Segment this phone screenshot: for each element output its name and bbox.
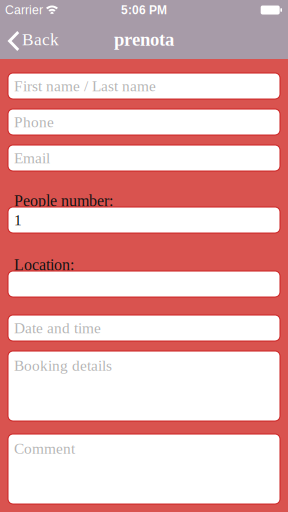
staticText: Back	[22, 30, 59, 49]
staticText: Booking details	[14, 357, 112, 374]
button[interactable]: Comment	[8, 434, 280, 504]
staticText: People number:	[14, 192, 113, 210]
staticText: Phone	[14, 113, 54, 130]
button[interactable]: Booking details	[8, 351, 280, 421]
button[interactable]: Back	[0, 20, 65, 59]
staticText: First name / Last name	[14, 77, 156, 94]
button[interactable]	[8, 271, 280, 297]
button[interactable]: First name / Last name	[8, 73, 280, 99]
staticText: Location:	[14, 256, 74, 274]
staticText: Email	[14, 149, 50, 166]
staticText: Carrier	[5, 3, 43, 17]
staticText: Date and time	[14, 319, 101, 336]
staticText: 1	[14, 211, 22, 228]
staticText: Comment	[14, 440, 75, 457]
button[interactable]: Email	[8, 145, 280, 171]
button[interactable]: Phone	[8, 109, 280, 135]
button[interactable]: Date and time	[8, 315, 280, 341]
staticText: prenota	[114, 29, 174, 50]
button[interactable]: 1	[8, 207, 280, 233]
staticText: 5:06 PM	[121, 3, 167, 17]
